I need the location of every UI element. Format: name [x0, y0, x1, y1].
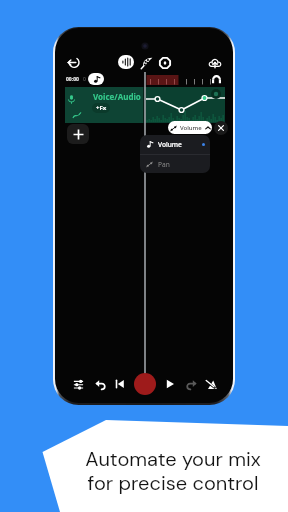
- button[interactable]: Close: [214, 121, 228, 135]
- button[interactable]: Play: [162, 376, 178, 392]
- staticText: 0: [83, 76, 86, 83]
- button[interactable]: Volume: [140, 135, 210, 154]
- button[interactable]: Edit: [139, 55, 154, 70]
- staticText: Volume: [180, 124, 202, 132]
- button[interactable]: Exit: [66, 55, 81, 70]
- button[interactable]: Metronome: [203, 376, 219, 392]
- button[interactable]: +Fx: [92, 103, 110, 113]
- button[interactable]: Mixer: [70, 376, 86, 392]
- button[interactable]: Snap: [210, 73, 222, 85]
- staticText: Volume: [158, 140, 182, 149]
- button[interactable]: Skip to start: [112, 376, 128, 392]
- button[interactable]: Record: [134, 373, 156, 395]
- staticText: Automate your mix for precise control: [58, 446, 288, 496]
- button[interactable]: Volume: [168, 121, 212, 134]
- button[interactable]: Add track: [67, 124, 89, 144]
- button[interactable]: Settings: [157, 55, 172, 70]
- button[interactable]: Undo: [92, 376, 108, 392]
- staticText: +Fx: [96, 104, 107, 112]
- staticText: Voice/Audio: [93, 91, 141, 102]
- button[interactable]: Waveform view: [118, 55, 134, 69]
- button[interactable]: Pan: [140, 155, 210, 173]
- button[interactable]: Upload: [207, 55, 222, 70]
- staticText: 00:00: [66, 76, 79, 83]
- button[interactable]: Redo: [183, 376, 199, 392]
- staticText: Pan: [158, 160, 170, 169]
- button[interactable]: Tempo: [88, 73, 104, 85]
